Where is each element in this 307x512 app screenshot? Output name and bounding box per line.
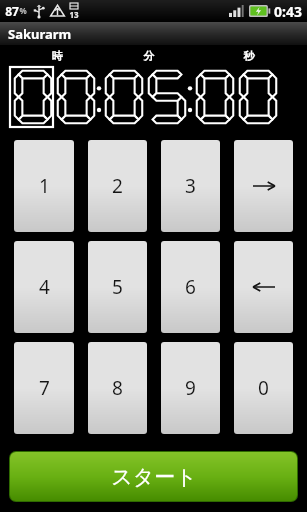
staticText: 4	[39, 274, 50, 300]
button[interactable]: 0	[234, 342, 293, 434]
staticText: 0	[258, 375, 269, 401]
staticText: 13	[69, 9, 79, 20]
staticText: %	[19, 5, 27, 16]
button[interactable]: 6	[161, 241, 220, 333]
staticText: 5	[112, 274, 123, 300]
button[interactable]: 1	[14, 140, 74, 232]
button[interactable]: 2	[88, 140, 147, 232]
button[interactable]: 4	[14, 241, 74, 333]
staticText: 2	[112, 173, 123, 199]
button[interactable]: 3	[161, 140, 220, 232]
staticText: 87	[5, 3, 19, 19]
staticText: 8	[112, 375, 123, 401]
staticText: 分	[139, 49, 159, 63]
button[interactable]: Backspace	[234, 241, 293, 333]
staticText: スタート	[111, 464, 197, 490]
button[interactable]: 8	[88, 342, 147, 434]
button[interactable]: 5	[88, 241, 147, 333]
staticText: 時	[47, 49, 67, 63]
button[interactable]: 7	[14, 342, 74, 434]
staticText: 3	[185, 173, 196, 199]
staticText: 0:43	[274, 2, 302, 21]
staticText: Sakurarm	[8, 25, 72, 43]
button[interactable]: 9	[161, 342, 220, 434]
staticText: 秒	[239, 49, 259, 63]
staticText: 1	[39, 173, 50, 199]
staticText: 6	[185, 274, 196, 300]
button[interactable]: Next field	[234, 140, 293, 232]
button[interactable]: スタート	[10, 452, 297, 501]
staticText: 7	[39, 375, 50, 401]
staticText: 9	[185, 375, 196, 401]
